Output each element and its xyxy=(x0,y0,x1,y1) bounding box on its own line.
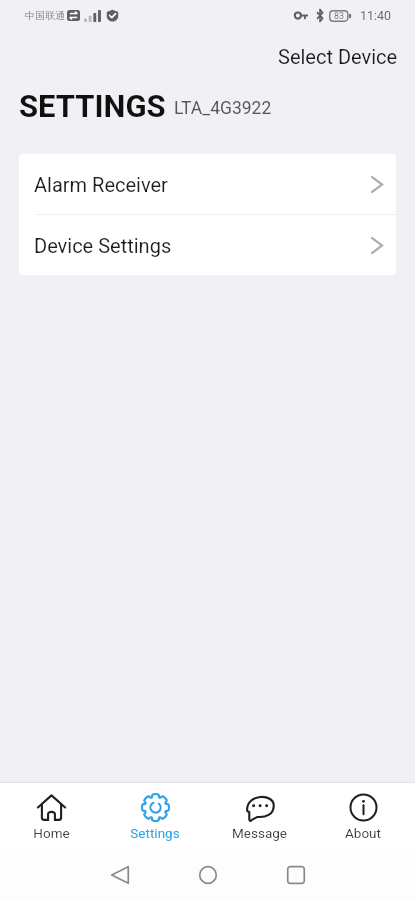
button[interactable]: Settings xyxy=(103,783,207,847)
staticText: Alarm Receiver xyxy=(34,173,168,196)
other: Recents xyxy=(287,866,305,884)
button[interactable]: Message xyxy=(207,783,311,847)
button[interactable]: Home xyxy=(0,783,103,847)
staticText: Home xyxy=(33,825,70,841)
button[interactable]: Recents xyxy=(252,855,340,895)
staticText: 83 xyxy=(334,11,345,22)
staticText: LTA_4G3922 xyxy=(174,98,272,119)
staticText: 11:40 xyxy=(360,8,392,23)
button[interactable]: Home xyxy=(164,855,252,895)
button[interactable]: Device Settings xyxy=(19,215,396,275)
button[interactable]: Select Device xyxy=(263,40,413,73)
button[interactable]: Alarm Receiver xyxy=(19,154,396,214)
other: Home xyxy=(199,866,217,884)
button[interactable]: About xyxy=(311,783,415,847)
staticText: Select Device xyxy=(278,45,398,68)
staticText: 中国联通 xyxy=(25,9,65,22)
staticText: Device Settings xyxy=(34,234,172,257)
other: Back xyxy=(111,866,129,884)
staticText: SETTINGS xyxy=(19,88,166,124)
staticText: Message xyxy=(232,825,287,841)
button[interactable]: Back xyxy=(76,855,164,895)
staticText: About xyxy=(345,825,381,841)
staticText: Settings xyxy=(130,825,180,841)
